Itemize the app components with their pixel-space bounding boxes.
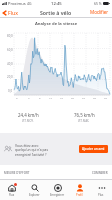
staticText: 12	[49, 96, 52, 99]
staticText: 0,0	[8, 89, 13, 93]
staticText: Vous étiez avec quelqu'un qui n'a pas en…	[15, 143, 52, 156]
staticText: VIT. MAX.	[78, 119, 90, 123]
button[interactable]: Profil	[68, 180, 90, 200]
staticText: Flux	[8, 9, 18, 16]
staticText: 65 %	[94, 1, 102, 6]
button[interactable]: Flux	[0, 180, 23, 200]
button[interactable]: Plus	[90, 180, 112, 200]
staticText: VIT. MOY.	[22, 119, 34, 123]
staticText: Analyse de la vitesse	[35, 21, 78, 27]
button[interactable]: Explorer	[23, 180, 46, 200]
staticText: Enregistrer	[50, 193, 65, 197]
button[interactable]: Flux	[0, 9, 21, 16]
staticText: 76,5 km/h	[74, 112, 95, 118]
staticText: 20,0	[7, 75, 13, 79]
staticText: 40,0	[7, 62, 13, 66]
staticText: Proximus	[8, 1, 26, 6]
staticText: 60,0	[7, 48, 13, 52]
staticText: 24	[82, 96, 85, 99]
staticText: 4	[28, 96, 30, 99]
staticText: Sortie à vélo	[40, 9, 72, 16]
staticText: Ajouter un ami	[82, 147, 105, 151]
other: Amis	[4, 145, 12, 153]
staticText: Flux	[9, 193, 15, 197]
staticText: 12:45	[51, 1, 62, 7]
staticText: 80,0	[7, 34, 13, 38]
button[interactable]: Modifier	[87, 9, 112, 15]
staticText: 28	[93, 96, 96, 99]
staticText: 0	[16, 96, 18, 99]
staticText: 4G	[27, 1, 32, 6]
staticText: MESURE D'EFFORT	[4, 171, 30, 175]
button[interactable]: Enregistrer	[46, 180, 68, 200]
staticText: 32	[104, 96, 107, 99]
staticText: 8	[39, 96, 41, 99]
staticText: 20	[71, 96, 74, 99]
staticText: COMPARER	[92, 171, 108, 175]
staticText: Plus	[98, 193, 104, 197]
staticText: Profil	[76, 193, 83, 197]
staticText: Explorer	[29, 193, 40, 197]
staticText: 16	[60, 96, 63, 99]
staticText: 24,4 km/h	[18, 112, 39, 118]
button[interactable]: Ajouter un ami	[79, 145, 108, 153]
